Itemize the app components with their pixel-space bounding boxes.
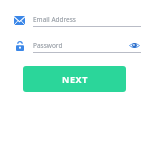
button[interactable]: Show password (127, 39, 141, 51)
other: Password (16, 41, 24, 51)
button[interactable]: Password (14, 39, 141, 53)
staticText: Email Address (33, 15, 76, 24)
button[interactable]: NEXT (23, 66, 126, 92)
staticText: Password (33, 41, 63, 50)
other: Email (14, 16, 25, 25)
staticText: NEXT (62, 73, 88, 85)
button[interactable]: Email (14, 13, 141, 27)
